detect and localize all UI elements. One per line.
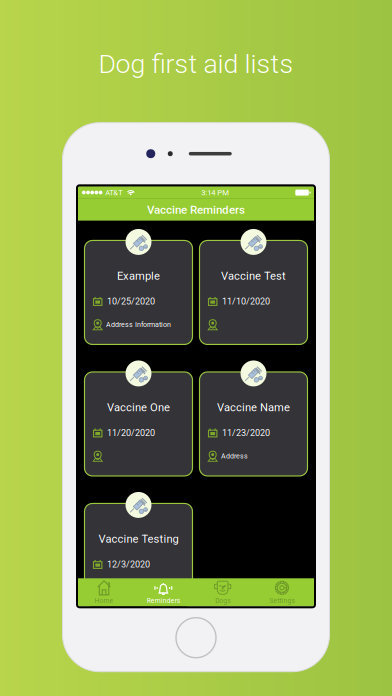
staticText: 11/20/2020 xyxy=(107,428,155,438)
button[interactable]: Dogs xyxy=(193,578,252,606)
staticText: Address xyxy=(221,452,248,460)
button[interactable]: Home xyxy=(74,578,134,606)
staticText: 11/10/2020 xyxy=(222,296,270,307)
staticText: 10/25/2020 xyxy=(107,296,155,307)
staticText: Address Information xyxy=(106,320,171,329)
staticText: Dogs xyxy=(215,597,230,605)
button[interactable]: Vaccine Name xyxy=(199,359,307,476)
button[interactable]: Vaccine Testing xyxy=(84,490,192,607)
staticText: Reminders xyxy=(147,597,180,605)
staticText: Vaccine One xyxy=(107,401,170,414)
staticText: Vaccine Test xyxy=(221,269,286,282)
staticText: Settings xyxy=(269,597,294,605)
button[interactable]: Vaccine Test xyxy=(199,227,307,344)
staticText: 11/23/2020 xyxy=(222,428,270,438)
button[interactable]: Settings xyxy=(252,578,312,606)
staticText: Vaccine Testing xyxy=(98,532,178,546)
staticText: Vaccine Name xyxy=(217,401,290,414)
staticText: Dog first aid lists xyxy=(98,48,293,80)
button[interactable]: Vaccine One xyxy=(84,359,192,476)
staticText: 12/3/2020 xyxy=(107,559,150,570)
staticText: 3:14 PM xyxy=(201,188,229,197)
staticText: Vaccine Reminders xyxy=(147,203,245,217)
staticText: Example xyxy=(117,269,160,282)
button[interactable]: Reminders xyxy=(134,578,193,606)
staticText: Home xyxy=(95,597,114,605)
staticText: AT&T xyxy=(105,188,122,197)
button[interactable]: Example xyxy=(84,227,192,344)
